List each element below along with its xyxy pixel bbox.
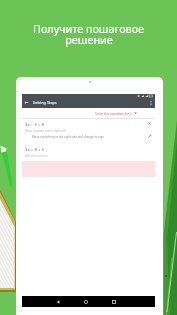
button[interactable]: Solve the equation for x <box>95 111 137 115</box>
button[interactable]: Back <box>24 100 29 105</box>
button[interactable]: Expand <box>147 134 152 139</box>
button[interactable]: Home <box>81 299 91 305</box>
staticText: Add the numbers <box>25 154 48 158</box>
button[interactable]: Back <box>53 299 63 305</box>
staticText: Move everything to the right side and ch… <box>32 135 105 139</box>
button[interactable]: Recents <box>109 299 119 305</box>
staticText: Solving Steps <box>33 100 57 105</box>
button[interactable]: More options <box>149 100 153 106</box>
button[interactable]: More options <box>22 94 155 108</box>
staticText: 3x − 5 = 8 <box>25 121 45 127</box>
staticText: Move constant to the right side <box>25 129 66 133</box>
staticText: 3x = 8 + 5 <box>25 146 45 152</box>
button[interactable]: Close <box>147 121 152 126</box>
staticText: Получите пошаговое <box>33 21 144 36</box>
staticText: Solve the equation for x <box>95 111 132 115</box>
staticText: решение <box>65 32 113 47</box>
